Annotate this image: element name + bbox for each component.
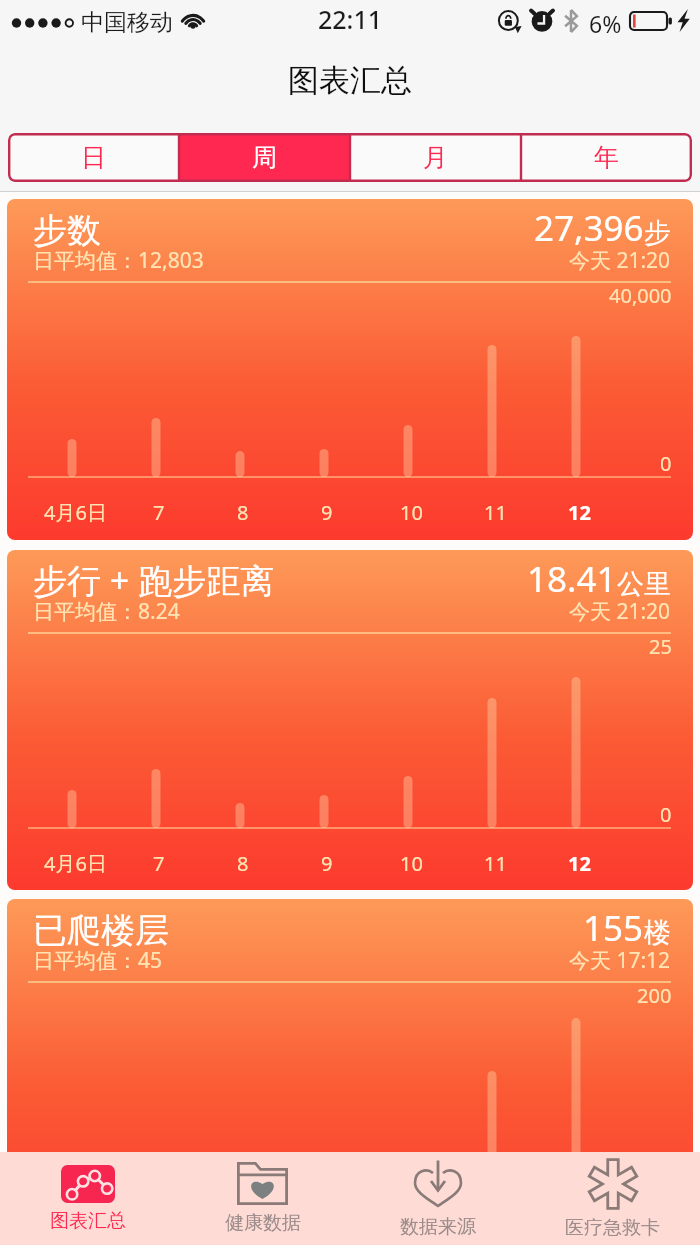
button[interactable]: 健康数据 xyxy=(175,1152,350,1245)
staticText: 今天 21:20 xyxy=(569,246,671,275)
button[interactable]: 周 xyxy=(179,133,350,182)
staticText: 8 xyxy=(237,850,249,877)
staticText: 10 xyxy=(400,499,423,526)
staticText: 日 xyxy=(81,142,106,173)
staticText: 数据来源 xyxy=(400,1215,476,1239)
staticText: 200 xyxy=(637,982,672,1009)
staticText: 40,000 xyxy=(609,282,672,309)
staticText: 中国移动 xyxy=(81,8,173,37)
staticText: 27,396 xyxy=(534,204,644,252)
button[interactable]: 年 xyxy=(521,133,692,182)
button[interactable]: 医疗急救卡 xyxy=(525,1152,700,1245)
staticText: 楼 xyxy=(644,916,671,950)
staticText: 12 xyxy=(568,850,591,877)
other: 健康数据 xyxy=(237,1162,288,1205)
button[interactable]: 数据来源 xyxy=(350,1152,525,1245)
staticText: 今天 21:20 xyxy=(569,597,671,626)
staticText: 年 xyxy=(594,142,619,173)
staticText: 9 xyxy=(321,499,333,526)
staticText: 医疗急救卡 xyxy=(565,1216,660,1240)
staticText: 健康数据 xyxy=(225,1211,301,1235)
staticText: 8 xyxy=(237,499,249,526)
staticText: 0 xyxy=(660,801,672,828)
staticText: 4月6日 xyxy=(44,499,107,526)
staticText: 步数 xyxy=(33,209,101,252)
other: 数据来源 xyxy=(413,1159,463,1209)
staticText: 11 xyxy=(484,850,507,877)
staticText: 7 xyxy=(153,499,165,526)
staticText: 图表汇总 xyxy=(288,61,412,100)
staticText: 4月6日 xyxy=(44,850,107,877)
button[interactable]: 日 xyxy=(8,133,179,182)
staticText: 22:11 xyxy=(318,2,383,36)
other: 医疗急救卡 xyxy=(587,1158,639,1210)
staticText: 今天 17:12 xyxy=(569,946,671,975)
staticText: 12 xyxy=(568,499,591,526)
other: 图表汇总 xyxy=(61,1165,115,1203)
staticText: 日平均值：12,803 xyxy=(33,246,204,275)
staticText: 9 xyxy=(321,850,333,877)
staticText: 公里 xyxy=(617,567,671,601)
staticText: 已爬楼层 xyxy=(33,909,169,952)
staticText: 日平均值：8.24 xyxy=(33,597,180,626)
button[interactable]: 月 xyxy=(350,133,521,182)
staticText: 图表汇总 xyxy=(50,1209,126,1233)
staticText: 0 xyxy=(660,450,672,477)
staticText: 7 xyxy=(153,850,165,877)
staticText: 月 xyxy=(423,142,448,173)
button[interactable]: 图表汇总 xyxy=(0,1152,175,1245)
button[interactable]: 已爬楼层 xyxy=(7,899,693,1152)
staticText: 步行 + 跑步距离 xyxy=(33,557,275,603)
button[interactable]: 步数 xyxy=(7,199,693,540)
staticText: 155 xyxy=(583,904,644,952)
staticText: 10 xyxy=(400,850,423,877)
button[interactable]: 步行 + 跑步距离 xyxy=(7,550,693,890)
staticText: 步 xyxy=(644,216,671,250)
staticText: 25 xyxy=(649,633,672,660)
staticText: 18.41 xyxy=(527,555,617,603)
staticText: 6% xyxy=(589,8,622,39)
staticText: 11 xyxy=(484,499,507,526)
staticText: 周 xyxy=(252,142,277,173)
staticText: 日平均值：45 xyxy=(33,946,163,975)
